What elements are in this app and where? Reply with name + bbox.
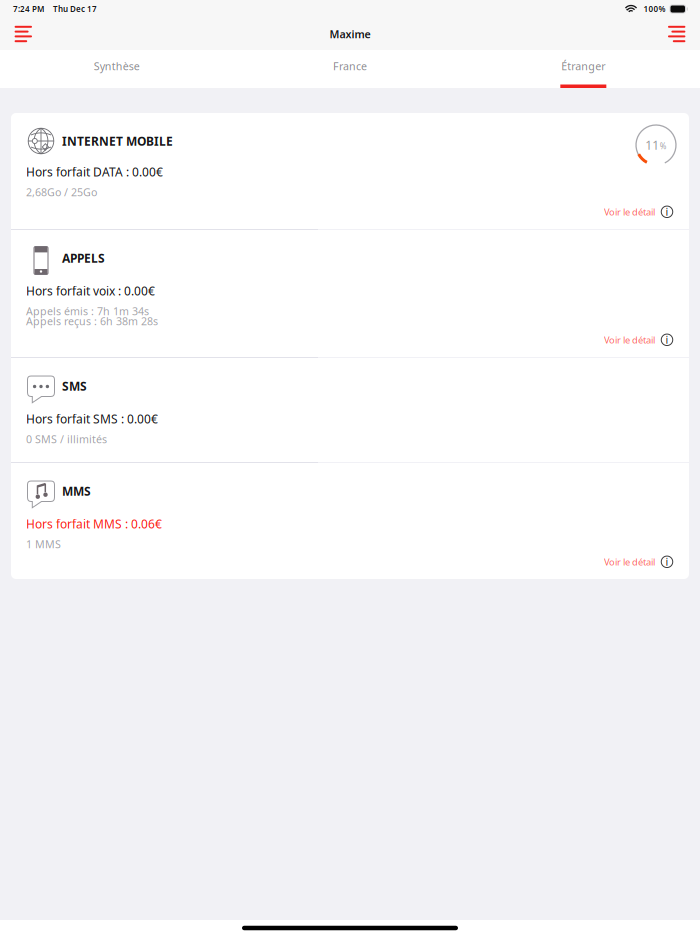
staticText: Étranger xyxy=(561,59,605,73)
staticText: Voir le détail xyxy=(604,206,655,218)
staticText: MMS xyxy=(62,483,91,499)
staticText: 1 MMS xyxy=(26,537,61,551)
button[interactable]: More options xyxy=(650,17,700,51)
staticText: 7:24 PM xyxy=(13,4,44,14)
staticText: Appels émis : 7h 1m 34s xyxy=(26,304,149,318)
button[interactable]: Voir le détail xyxy=(594,551,689,573)
staticText: 100% xyxy=(643,4,665,14)
staticText: Synthèse xyxy=(94,59,140,73)
staticText: SMS xyxy=(62,378,87,394)
staticText: Hors forfait MMS : 0.06€ xyxy=(26,516,162,532)
staticText: Voir le détail xyxy=(604,556,655,568)
staticText: i xyxy=(665,554,668,569)
staticText: Hors forfait SMS : 0.00€ xyxy=(26,411,158,427)
staticText: France xyxy=(333,59,367,73)
staticText: Voir le détail xyxy=(604,334,655,346)
button[interactable]: Menu xyxy=(0,17,50,51)
button[interactable]: Voir le détail xyxy=(594,201,689,223)
staticText: APPELS xyxy=(62,250,105,266)
staticText: Hors forfait DATA : 0.00€ xyxy=(26,164,163,180)
button[interactable]: France xyxy=(233,50,467,88)
staticText: Maxime xyxy=(329,27,370,41)
staticText: i xyxy=(665,332,668,347)
staticText: Hors forfait voix : 0.00€ xyxy=(26,283,155,299)
button[interactable]: Étranger xyxy=(467,50,700,88)
staticText: % xyxy=(660,141,667,151)
button[interactable]: Synthèse xyxy=(0,50,233,88)
staticText: INTERNET MOBILE xyxy=(62,133,173,149)
staticText: i xyxy=(665,204,668,219)
button[interactable]: Voir le détail xyxy=(594,329,689,351)
staticText: 2,68Go / 25Go xyxy=(26,185,97,199)
staticText: Thu Dec 17 xyxy=(53,4,97,14)
staticText: 0 SMS / illimités xyxy=(26,432,107,446)
staticText: 11 xyxy=(645,137,659,153)
staticText: Appels reçus : 6h 38m 28s xyxy=(26,314,158,328)
